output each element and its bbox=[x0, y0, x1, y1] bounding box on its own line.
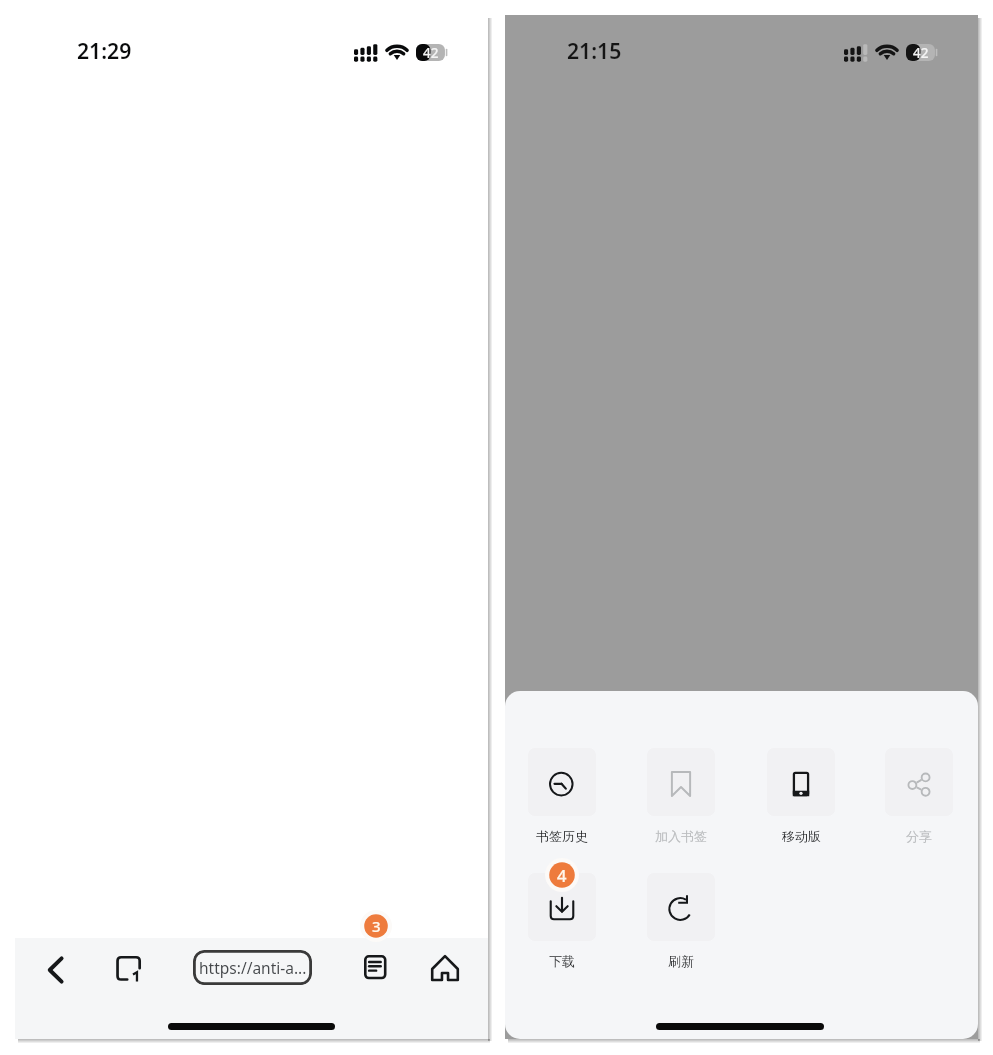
staticText: 移动版 bbox=[782, 828, 821, 844]
staticText: https://anti-a... bbox=[199, 957, 307, 978]
button[interactable]: https://anti-a... bbox=[193, 950, 312, 985]
staticText: 加入书签 bbox=[655, 828, 707, 844]
staticText: 3 bbox=[372, 916, 381, 936]
button[interactable]: Tabs bbox=[113, 954, 147, 988]
button[interactable]: Back bbox=[39, 953, 73, 987]
button[interactable]: 下载 bbox=[520, 873, 604, 969]
button[interactable]: 移动版 bbox=[759, 748, 843, 844]
staticText: 下载 bbox=[549, 953, 575, 969]
staticText: 21:29 bbox=[77, 36, 132, 65]
staticText: 分享 bbox=[906, 828, 932, 844]
staticText: 42 bbox=[913, 44, 929, 61]
button[interactable]: Home bbox=[429, 953, 461, 985]
button[interactable]: Reader mode bbox=[360, 952, 392, 984]
staticText: 4 bbox=[557, 864, 567, 887]
staticText: 书签历史 bbox=[536, 828, 588, 844]
staticText: 21:15 bbox=[567, 36, 622, 65]
button[interactable]: 书签历史 bbox=[520, 748, 604, 844]
staticText: 刷新 bbox=[668, 953, 694, 969]
button[interactable]: 分享 bbox=[877, 748, 961, 844]
button[interactable]: 加入书签 bbox=[639, 748, 723, 844]
button[interactable]: 刷新 bbox=[639, 873, 723, 969]
staticText: 42 bbox=[423, 44, 439, 61]
